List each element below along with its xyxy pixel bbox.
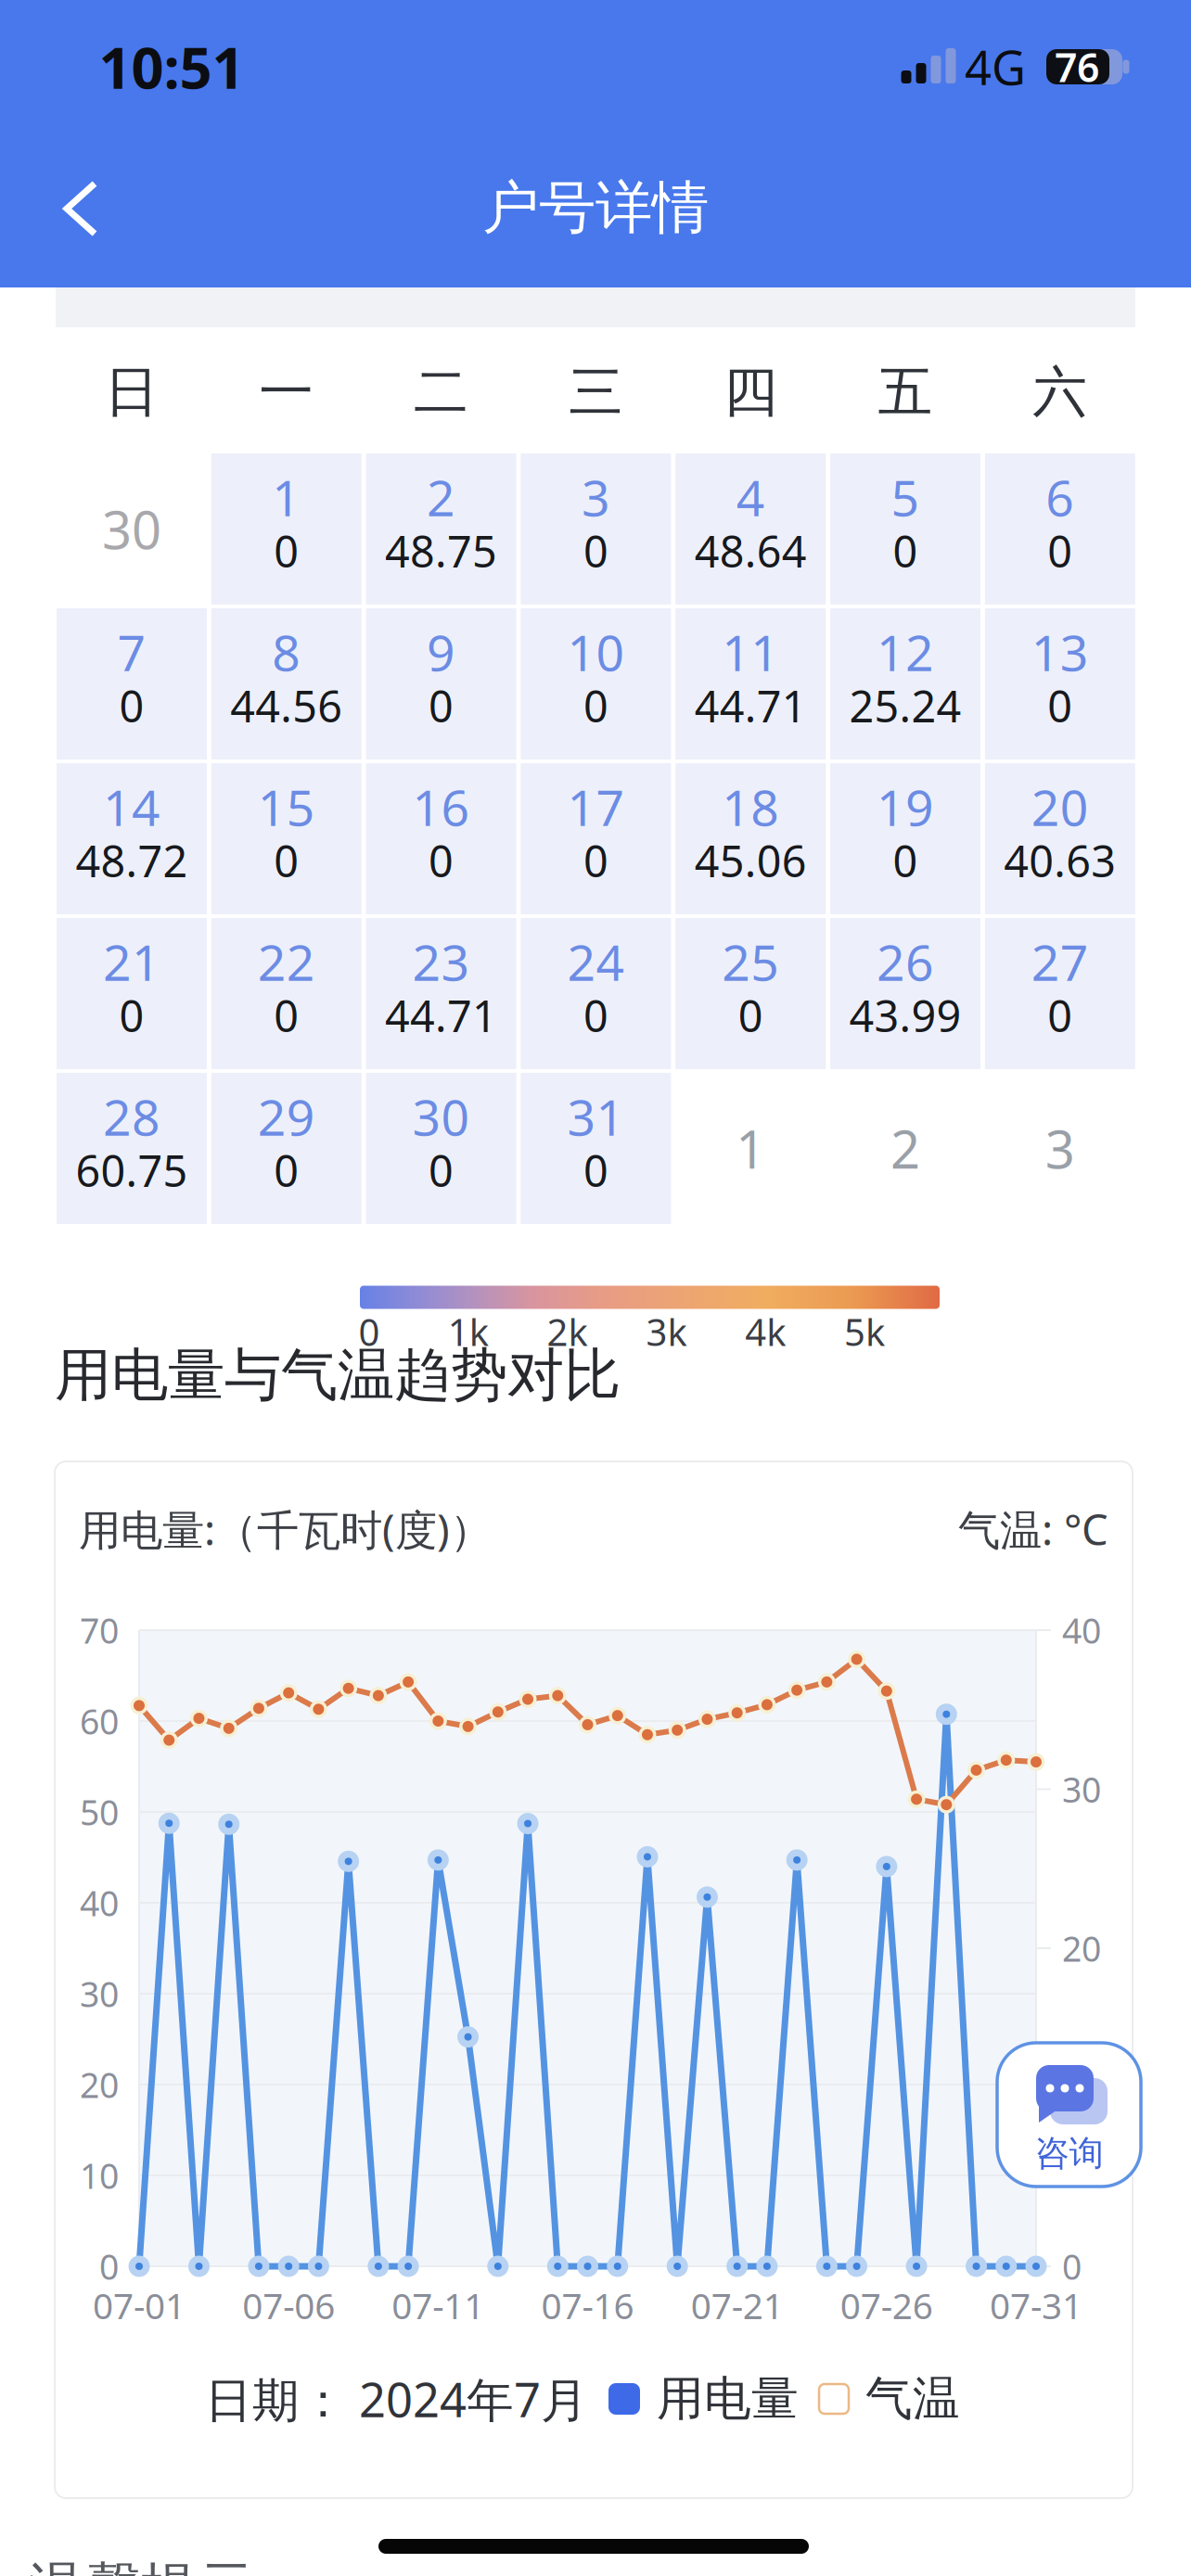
button[interactable]: 14 bbox=[57, 763, 207, 914]
staticText: 20 bbox=[80, 2062, 119, 2108]
staticText: 5 bbox=[891, 464, 920, 530]
staticText: 45.06 bbox=[694, 832, 807, 889]
button[interactable]: 28 bbox=[57, 1073, 207, 1224]
staticText: 14 bbox=[103, 774, 160, 840]
staticText: 3 bbox=[1045, 1114, 1075, 1183]
staticText: 20 bbox=[1062, 1925, 1101, 1971]
button[interactable]: 17 bbox=[521, 763, 671, 914]
button[interactable]: 13 bbox=[985, 608, 1135, 759]
staticText: 日 bbox=[104, 359, 159, 426]
staticText: 0 bbox=[359, 1307, 380, 1356]
staticText: 气温 bbox=[865, 2370, 960, 2428]
staticText: 60.75 bbox=[76, 1141, 188, 1199]
button[interactable]: 5 bbox=[830, 453, 980, 605]
button[interactable]: 气温 bbox=[819, 2370, 960, 2428]
staticText: 0 bbox=[274, 1141, 299, 1199]
staticText: 07-16 bbox=[541, 2281, 634, 2329]
staticText: 25 bbox=[722, 929, 779, 994]
button[interactable]: 31 bbox=[521, 1073, 671, 1224]
staticText: 24 bbox=[567, 929, 625, 994]
button[interactable]: 6 bbox=[985, 453, 1135, 605]
staticText: 30 bbox=[1062, 1766, 1101, 1812]
staticText: 0 bbox=[583, 677, 608, 734]
button[interactable]: 23 bbox=[366, 918, 516, 1069]
staticText: 3 bbox=[581, 464, 610, 530]
button[interactable]: 1 bbox=[211, 453, 362, 605]
staticText: 43.99 bbox=[849, 987, 961, 1044]
staticText: 11 bbox=[722, 619, 779, 685]
button[interactable]: 7 bbox=[57, 608, 207, 759]
button[interactable]: 29 bbox=[211, 1073, 362, 1224]
staticText: 27 bbox=[1031, 929, 1089, 994]
button[interactable]: 2 bbox=[366, 453, 516, 605]
staticText: 17 bbox=[567, 774, 625, 840]
staticText: 48.64 bbox=[694, 522, 807, 580]
staticText: 07-26 bbox=[840, 2281, 933, 2329]
staticText: 0 bbox=[429, 677, 454, 734]
button[interactable]: 8 bbox=[211, 608, 362, 759]
staticText: 28 bbox=[103, 1084, 160, 1149]
staticText: 0 bbox=[583, 987, 608, 1044]
button[interactable]: 18 bbox=[675, 763, 826, 914]
staticText: 0 bbox=[274, 832, 299, 889]
button[interactable]: 21 bbox=[57, 918, 207, 1069]
button[interactable]: 25 bbox=[675, 918, 826, 1069]
button[interactable]: 16 bbox=[366, 763, 516, 914]
staticText: 13 bbox=[1031, 619, 1089, 685]
staticText: 5k bbox=[844, 1307, 885, 1356]
staticText: 40.63 bbox=[1004, 832, 1116, 889]
button[interactable]: 20 bbox=[985, 763, 1135, 914]
staticText: 16 bbox=[412, 774, 470, 840]
button[interactable]: 30 bbox=[366, 1073, 516, 1224]
button[interactable]: 用电量 bbox=[608, 2370, 799, 2428]
staticText: 用电量与气温趋势对比 bbox=[55, 1340, 621, 1410]
button[interactable]: 12 bbox=[830, 608, 980, 759]
staticText: 0 bbox=[119, 987, 144, 1044]
staticText: 4G bbox=[965, 36, 1026, 98]
staticText: 48.72 bbox=[76, 832, 188, 889]
staticText: 咨询 bbox=[1035, 2132, 1103, 2174]
staticText: 44.56 bbox=[230, 677, 343, 734]
staticText: 二 bbox=[414, 359, 469, 426]
button[interactable]: 3 bbox=[521, 453, 671, 605]
staticText: 44.71 bbox=[694, 677, 807, 734]
button[interactable]: 26 bbox=[830, 918, 980, 1069]
button[interactable]: 27 bbox=[985, 918, 1135, 1069]
button[interactable]: 24 bbox=[521, 918, 671, 1069]
staticText: 20 bbox=[1031, 774, 1089, 840]
staticText: 29 bbox=[258, 1084, 315, 1149]
staticText: 1k bbox=[448, 1307, 489, 1356]
staticText: 4k bbox=[745, 1307, 786, 1356]
staticText: 10 bbox=[1062, 2084, 1101, 2130]
staticText: 4 bbox=[736, 464, 765, 530]
staticText: 23 bbox=[412, 929, 470, 994]
button[interactable]: 9 bbox=[366, 608, 516, 759]
button[interactable]: 4 bbox=[675, 453, 826, 605]
staticText: 1 bbox=[736, 1114, 765, 1183]
button[interactable]: 咨询 bbox=[997, 2043, 1141, 2187]
staticText: 19 bbox=[877, 774, 934, 840]
button[interactable]: 19 bbox=[830, 763, 980, 914]
staticText: 日期： 2024年7月 bbox=[205, 2368, 588, 2430]
button[interactable]: 22 bbox=[211, 918, 362, 1069]
staticText: 31 bbox=[567, 1084, 625, 1149]
staticText: 25.24 bbox=[849, 677, 961, 734]
button[interactable]: 15 bbox=[211, 763, 362, 914]
staticText: 70 bbox=[80, 1607, 119, 1653]
staticText: 22 bbox=[258, 929, 315, 994]
staticText: 07-21 bbox=[691, 2281, 784, 2329]
staticText: 18 bbox=[722, 774, 779, 840]
staticText: 07-01 bbox=[93, 2281, 186, 2329]
staticText: 0 bbox=[893, 522, 918, 580]
button[interactable]: 返回 bbox=[54, 176, 109, 241]
button[interactable]: 11 bbox=[675, 608, 826, 759]
staticText: 30 bbox=[412, 1084, 470, 1149]
staticText: 30 bbox=[102, 495, 161, 564]
staticText: 用电量:（千瓦时(度)） bbox=[79, 1501, 492, 1557]
staticText: 0 bbox=[893, 832, 918, 889]
staticText: 50 bbox=[80, 1789, 119, 1835]
staticText: 三 bbox=[569, 359, 623, 426]
staticText: 0 bbox=[583, 1141, 608, 1199]
staticText: 0 bbox=[583, 832, 608, 889]
button[interactable]: 10 bbox=[521, 608, 671, 759]
